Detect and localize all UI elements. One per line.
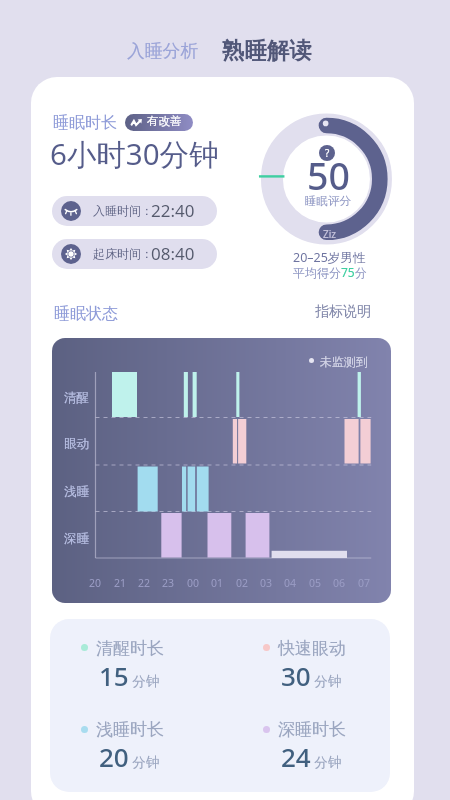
- staticText: 01: [211, 576, 224, 590]
- staticText: 02: [236, 576, 249, 590]
- button[interactable]: [52, 239, 217, 269]
- staticText: 6小时30分钟: [50, 133, 219, 173]
- staticText: 清醒时长: [96, 638, 164, 659]
- staticText: 50: [307, 150, 350, 201]
- staticText: 清醒: [64, 390, 89, 406]
- staticText: 08:40: [151, 242, 195, 265]
- staticText: 20: [89, 576, 102, 590]
- staticText: 03: [260, 576, 273, 590]
- staticText: 23: [162, 576, 175, 590]
- staticText: 深睡时长: [278, 719, 346, 740]
- button[interactable]: 指标说明: [306, 300, 380, 324]
- staticText: 睡眠时长: [53, 113, 117, 133]
- staticText: 22:40: [151, 199, 195, 222]
- staticText: 熟睡解读: [222, 36, 312, 64]
- button[interactable]: [125, 114, 193, 131]
- button[interactable]: 熟睡解读: [213, 31, 321, 69]
- staticText: 眼动: [64, 436, 89, 452]
- staticText: 未监测到: [320, 354, 368, 369]
- button[interactable]: [52, 196, 217, 226]
- staticText: 20 分钟: [99, 739, 160, 774]
- staticText: 30 分钟: [281, 658, 342, 693]
- staticText: 快速眼动: [278, 638, 346, 659]
- staticText: 浅睡: [64, 484, 89, 500]
- staticText: 07: [358, 576, 371, 590]
- staticText: 浅睡时长: [96, 719, 164, 740]
- button[interactable]: 说明: [319, 145, 335, 161]
- staticText: Ziz: [323, 227, 336, 241]
- staticText: 平均得分75分: [293, 264, 367, 280]
- staticText: 起床时间：: [93, 246, 153, 261]
- staticText: 深睡: [64, 531, 89, 547]
- staticText: 24 分钟: [281, 739, 342, 774]
- staticText: 睡眠状态: [54, 304, 118, 324]
- staticText: 05: [309, 576, 322, 590]
- staticText: 入睡时间：: [93, 203, 153, 218]
- staticText: 20–25岁男性: [293, 249, 366, 266]
- staticText: ?: [325, 146, 330, 160]
- staticText: 有改善: [147, 114, 182, 128]
- staticText: 21: [114, 576, 127, 590]
- staticText: 睡眠评分: [305, 194, 351, 208]
- staticText: 00: [187, 576, 200, 590]
- staticText: 04: [284, 576, 297, 590]
- staticText: 06: [333, 576, 346, 590]
- button[interactable]: 入睡分析: [115, 35, 211, 67]
- staticText: 指标说明: [315, 303, 371, 321]
- staticText: 15 分钟: [99, 658, 160, 693]
- staticText: 入睡分析: [127, 40, 199, 62]
- staticText: 22: [138, 576, 151, 590]
